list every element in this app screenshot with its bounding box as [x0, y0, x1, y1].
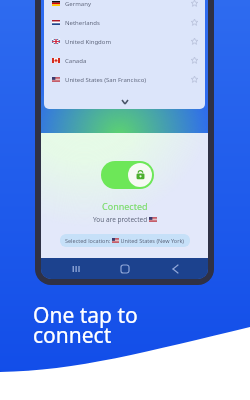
- staticText: Connected: [102, 200, 148, 212]
- staticText: United States (San Francisco): [65, 76, 147, 84]
- button[interactable]: United States (San Francisco): [44, 70, 205, 89]
- button[interactable]: Germany: [44, 0, 205, 13]
- staticText: Germany: [65, 0, 91, 8]
- button[interactable]: Canada: [44, 51, 205, 70]
- button[interactable]: Home: [100, 258, 149, 279]
- button[interactable]: United Kingdom: [44, 32, 205, 51]
- button[interactable]: Disconnect VPN: [101, 161, 154, 189]
- staticText: United Kingdom: [65, 38, 112, 46]
- staticText: Selected location:: [65, 237, 112, 244]
- button[interactable]: Netherlands: [44, 13, 205, 32]
- button[interactable]: Expand: [44, 89, 205, 109]
- staticText: One tap to connect: [33, 301, 138, 349]
- staticText: You are protected: [93, 215, 149, 224]
- button[interactable]: Back: [149, 258, 198, 279]
- staticText: Canada: [65, 57, 87, 65]
- staticText: Netherlands: [65, 19, 100, 27]
- button[interactable]: Recents: [51, 258, 100, 279]
- staticText: United States (New York): [119, 237, 185, 244]
- button[interactable]: Selected location:: [60, 234, 190, 247]
